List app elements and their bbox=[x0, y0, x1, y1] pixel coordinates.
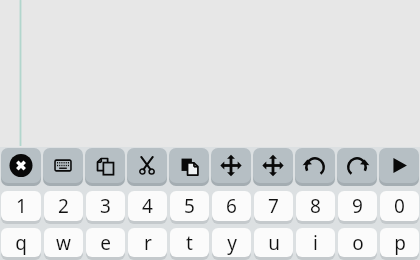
button[interactable]: 6 bbox=[212, 191, 251, 224]
button[interactable]: Keyboard layout bbox=[43, 148, 83, 186]
button[interactable]: 1 bbox=[1, 191, 41, 224]
button[interactable]: 0 bbox=[380, 191, 419, 224]
button[interactable]: p bbox=[380, 228, 419, 260]
staticText: 4 bbox=[142, 193, 153, 219]
button[interactable]: Move bbox=[211, 148, 251, 186]
button[interactable]: 9 bbox=[338, 191, 377, 224]
button[interactable]: 7 bbox=[254, 191, 293, 224]
staticText: 0 bbox=[394, 193, 405, 219]
staticText: w bbox=[56, 230, 71, 256]
staticText: 1 bbox=[16, 193, 27, 219]
staticText: r bbox=[144, 230, 152, 256]
button[interactable]: e bbox=[86, 228, 125, 260]
staticText: y bbox=[227, 230, 237, 256]
staticText: 6 bbox=[226, 193, 237, 219]
staticText: 9 bbox=[352, 193, 363, 219]
staticText: 3 bbox=[100, 193, 111, 219]
button[interactable]: Undo bbox=[295, 148, 335, 186]
button[interactable]: 3 bbox=[86, 191, 125, 224]
button[interactable]: u bbox=[254, 228, 293, 260]
button[interactable]: i bbox=[296, 228, 335, 260]
button[interactable]: t bbox=[170, 228, 209, 260]
staticText: 2 bbox=[58, 193, 69, 219]
button[interactable]: Cut bbox=[127, 148, 167, 186]
button[interactable]: r bbox=[128, 228, 167, 260]
staticText: e bbox=[100, 230, 111, 256]
button[interactable]: Redo bbox=[337, 148, 377, 186]
button[interactable]: 4 bbox=[128, 191, 167, 224]
button[interactable]: Close keyboard bbox=[1, 148, 41, 186]
staticText: 5 bbox=[184, 193, 195, 219]
button[interactable]: 2 bbox=[44, 191, 83, 224]
staticText: q bbox=[15, 230, 27, 256]
button[interactable]: 8 bbox=[296, 191, 335, 224]
button[interactable]: w bbox=[44, 228, 83, 260]
staticText: p bbox=[394, 230, 406, 256]
button[interactable]: Paste bbox=[169, 148, 209, 186]
staticText: i bbox=[313, 230, 318, 256]
staticText: 8 bbox=[310, 193, 321, 219]
button[interactable]: y bbox=[212, 228, 251, 260]
button[interactable]: o bbox=[338, 228, 377, 260]
staticText: 7 bbox=[268, 193, 279, 219]
button[interactable]: Select all bbox=[253, 148, 293, 186]
staticText: o bbox=[352, 230, 364, 256]
button[interactable]: q bbox=[1, 228, 41, 260]
button[interactable]: Run bbox=[379, 148, 419, 186]
staticText: t bbox=[186, 230, 193, 256]
button[interactable]: 5 bbox=[170, 191, 209, 224]
button[interactable]: Copy bbox=[85, 148, 125, 186]
staticText: u bbox=[268, 230, 280, 256]
